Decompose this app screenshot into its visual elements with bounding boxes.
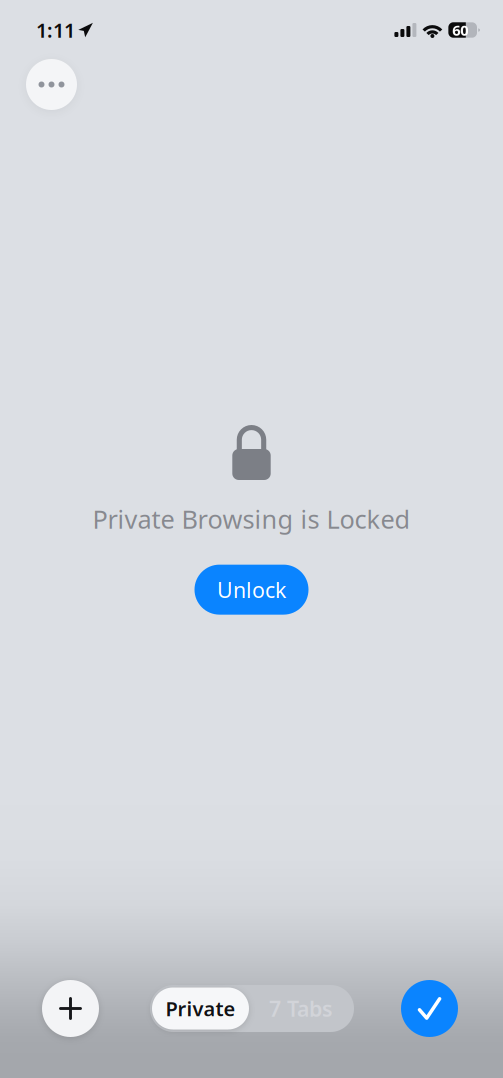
button[interactable]: More <box>26 59 77 110</box>
staticText: Unlock <box>217 575 286 604</box>
button[interactable]: New Tab <box>42 980 99 1037</box>
staticText: 60 <box>452 20 468 40</box>
button[interactable]: Done <box>401 980 458 1037</box>
staticText: 1:11 <box>36 17 75 43</box>
staticText: Private Browsing is Locked <box>92 502 410 536</box>
staticText: 7 Tabs <box>269 994 333 1023</box>
button[interactable]: Private <box>150 985 354 1032</box>
button[interactable]: Unlock <box>194 565 308 615</box>
staticText: Private <box>165 995 235 1022</box>
